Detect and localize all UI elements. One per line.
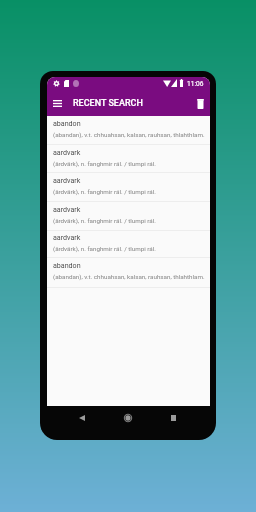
button[interactable]: abandon [47, 258, 210, 288]
staticText: (ärdvärk), n. fanghmir rál. / tlumpi rál… [53, 217, 156, 224]
button[interactable]: Open navigation menu [47, 92, 67, 115]
button[interactable]: abandon [47, 116, 210, 145]
staticText: (ärdvärk), n. fanghmir rál. / tlumpi rál… [53, 245, 156, 252]
staticText: (ärdvärk), n. fanghmir rál. / tlumpi rál… [53, 188, 156, 195]
button[interactable]: aardvark [47, 173, 210, 202]
button[interactable]: Recent apps [163, 408, 183, 428]
button[interactable]: Delete search history [190, 92, 210, 115]
button[interactable]: aardvark [47, 202, 210, 231]
button[interactable]: aardvark [47, 145, 210, 173]
staticText: aardvark [53, 176, 81, 184]
staticText: (ärdvärk), n. fanghmir rál. / tlumpi rál… [53, 160, 156, 167]
staticText: abandon [53, 119, 81, 127]
staticText: (abandan), v.t. chhuahsan, kalsan, rauhs… [53, 131, 205, 138]
staticText: (abandan), v.t. chhuahsan, kalsan, rauhs… [53, 273, 205, 280]
button[interactable]: aardvark [47, 230, 210, 258]
staticText: RECENT SEARCH [73, 98, 143, 109]
button[interactable]: Back [72, 408, 92, 428]
staticText: aardvark [53, 205, 81, 213]
staticText: abandon [53, 261, 81, 269]
staticText: 11:06 [187, 80, 204, 88]
button[interactable]: Home [118, 408, 138, 428]
staticText: aardvark [53, 233, 81, 241]
staticText: aardvark [53, 148, 81, 156]
